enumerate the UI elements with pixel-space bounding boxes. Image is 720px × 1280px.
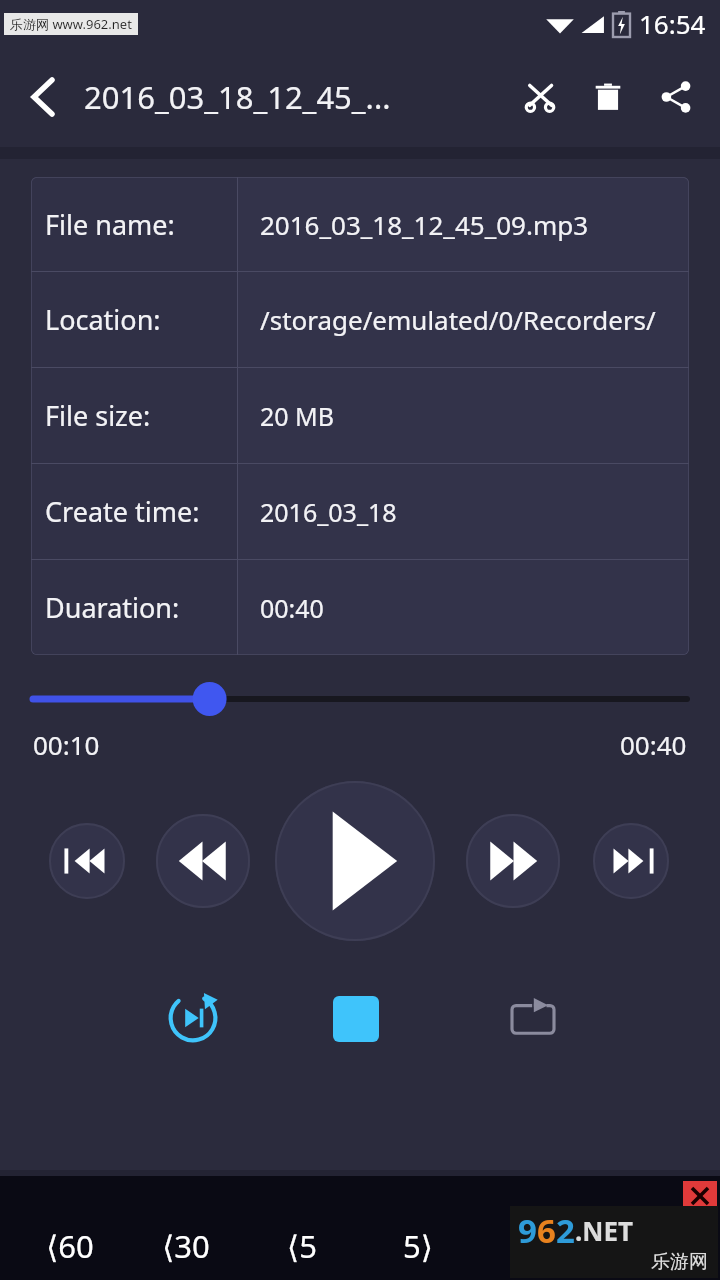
- staticText: 60⟩: [626, 1225, 674, 1267]
- staticText: ⟨60: [46, 1225, 94, 1267]
- staticText: File size:: [45, 397, 151, 434]
- staticText: .NET: [575, 1213, 634, 1248]
- staticText: 16:54: [639, 6, 706, 41]
- staticText: 9: [518, 1208, 537, 1253]
- button[interactable]: ⟨60: [12, 1200, 128, 1280]
- button[interactable]: Delete: [580, 69, 636, 125]
- button[interactable]: Replay: [157, 982, 229, 1054]
- staticText: 6: [537, 1208, 556, 1253]
- staticText: 2016_03_18_12_45_09.mp3: [260, 207, 589, 242]
- button[interactable]: Cut: [512, 69, 568, 125]
- button[interactable]: Repeat: [500, 986, 566, 1052]
- staticText: 00:40: [620, 727, 687, 762]
- button[interactable]: ⟨5: [244, 1200, 360, 1280]
- staticText: 乐游网: [651, 1250, 708, 1274]
- staticText: Location:: [45, 301, 161, 338]
- staticText: /storage/emulated/0/Recorders/: [260, 302, 656, 337]
- button[interactable]: Skip previous: [49, 823, 125, 899]
- button[interactable]: Fast forward: [466, 814, 560, 908]
- staticText: 2016_03_18: [260, 495, 397, 529]
- staticText: File name:: [45, 206, 175, 243]
- staticText: 20 MB: [260, 399, 335, 433]
- button[interactable]: Close: [683, 1181, 717, 1211]
- staticText: 00:40: [260, 591, 324, 625]
- staticText: 2016_03_18_12_45_...: [84, 76, 391, 118]
- button[interactable]: Stop: [333, 996, 379, 1042]
- button[interactable]: 60⟩: [592, 1200, 708, 1280]
- button[interactable]: [33, 677, 687, 721]
- staticText: ⟨30: [162, 1225, 210, 1267]
- button[interactable]: 30⟩: [476, 1200, 592, 1280]
- staticText: 5⟩: [403, 1225, 433, 1267]
- button[interactable]: 5⟩: [360, 1200, 476, 1280]
- button[interactable]: ⟨30: [128, 1200, 244, 1280]
- staticText: Duaration:: [45, 589, 180, 626]
- staticText: ⟨5: [287, 1225, 317, 1267]
- staticText: 2: [556, 1208, 575, 1253]
- button[interactable]: Share: [648, 69, 704, 125]
- button[interactable]: Back: [20, 74, 66, 120]
- button[interactable]: Skip next: [593, 823, 669, 899]
- staticText: 00:10: [33, 727, 100, 762]
- staticText: 乐游网 www.962.net: [10, 15, 132, 33]
- staticText: Create time:: [45, 493, 200, 530]
- button[interactable]: Rewind: [156, 814, 250, 908]
- button[interactable]: Play: [275, 781, 435, 941]
- staticText: 30⟩: [510, 1225, 558, 1267]
